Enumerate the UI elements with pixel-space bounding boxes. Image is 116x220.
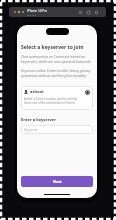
button[interactable]: Next [21,176,93,187]
staticText: iPhone 14 Pro [27,9,48,13]
staticText: iOS 16.2 [27,13,37,16]
staticText: Next [53,179,62,184]
button[interactable]: ashoat [21,86,93,110]
staticText: Enter a keyserver [21,117,56,122]
staticText: Chat communities on Comm are hosted on k… [21,55,93,64]
button[interactable]: Rotate device [78,10,83,15]
staticText: Select a keyserver to join [21,44,84,51]
staticText: ashoat [30,89,44,94]
button[interactable]: Take screenshot [86,10,91,15]
staticText: Keyserver [24,128,38,132]
staticText: Ashoat is Comm's founder, and he current… [24,97,84,105]
button[interactable]: More options [94,10,99,15]
button[interactable]: Keyserver [21,125,93,134]
staticText: Keyservers allow Comm to offer strong pr… [21,69,93,78]
